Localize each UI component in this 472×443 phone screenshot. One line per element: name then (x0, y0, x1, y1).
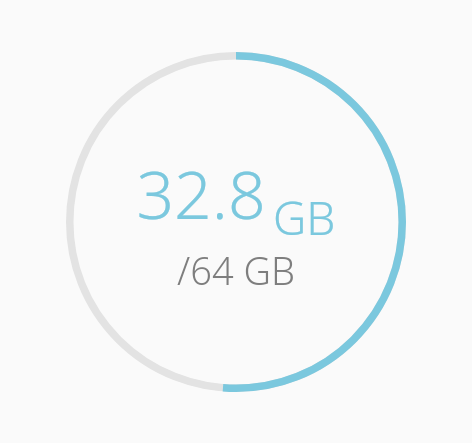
staticText: 32.8 (136, 148, 266, 238)
staticText: GB (273, 186, 336, 238)
button[interactable]: Storage used 32.8 GB of 64 GB (66, 52, 406, 392)
staticText: /64 GB (177, 244, 295, 296)
